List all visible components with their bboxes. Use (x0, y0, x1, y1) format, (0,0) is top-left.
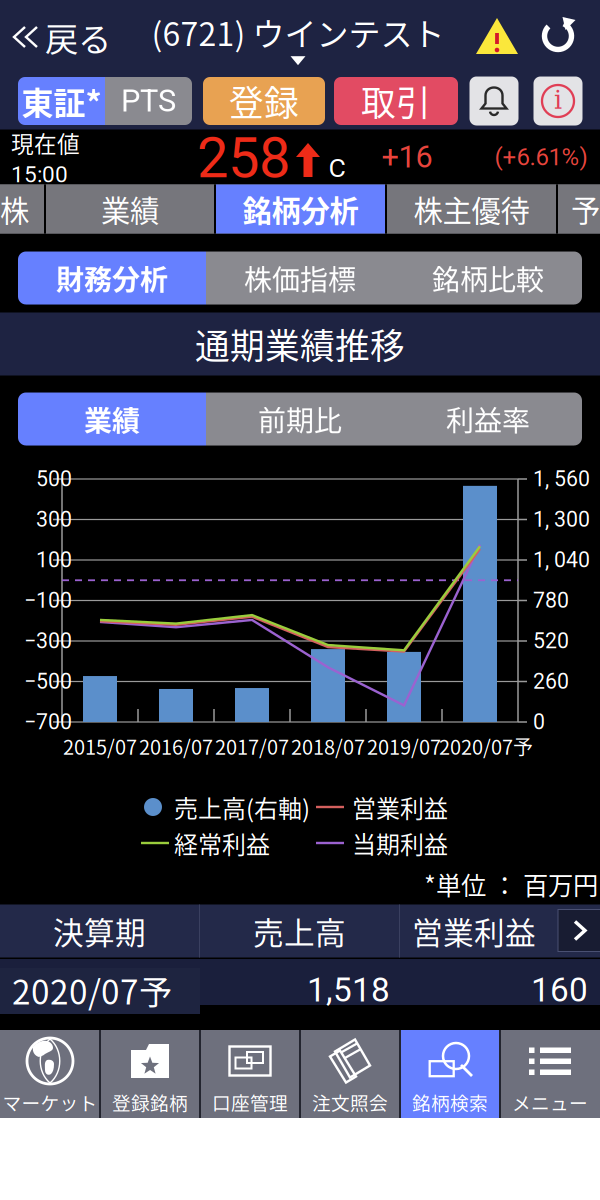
button[interactable]: 業績 (46, 184, 214, 233)
button[interactable]: 前期比 (206, 392, 394, 445)
staticText: 2017/07 (215, 731, 289, 760)
button[interactable]: 銘柄比較 (394, 251, 582, 304)
staticText: −300 (24, 628, 72, 653)
staticText: 営業利益 (412, 909, 536, 953)
staticText: 株 (0, 188, 29, 230)
staticText: 260 (533, 669, 569, 694)
staticText: 300 (36, 507, 72, 532)
staticText: 1,518 (307, 970, 390, 1010)
staticText: 500 (36, 466, 72, 491)
staticText: 2018/07 (291, 731, 365, 760)
staticText: 780 (533, 588, 569, 613)
staticText: 160 (531, 970, 588, 1010)
staticText: 登録銘柄 (112, 1088, 188, 1115)
staticText: 100 (36, 547, 72, 572)
staticText: 財務分析 (56, 258, 168, 298)
staticText: 戻る (45, 13, 111, 61)
button[interactable]: 情報 (533, 76, 582, 125)
staticText: 銘柄検索 (412, 1088, 488, 1115)
staticText: 注文照会 (312, 1088, 388, 1115)
staticText: PTS (121, 83, 176, 119)
staticText: 2020/07予 (439, 731, 533, 760)
staticText: 258 (197, 125, 290, 191)
staticText: 営業利益 (352, 790, 448, 824)
button[interactable]: 株 (0, 184, 44, 233)
staticText: 通期業績推移 (195, 319, 405, 369)
button[interactable]: 財務分析 (18, 251, 206, 304)
button[interactable]: 次へ (558, 909, 600, 951)
button[interactable]: 取引 (334, 77, 458, 125)
staticText: 銘柄比較 (432, 258, 544, 298)
staticText: 1, 040 (533, 547, 590, 572)
button[interactable]: 警告 (477, 18, 517, 54)
staticText: 2016/07 (139, 731, 213, 760)
staticText: 現在値 (11, 126, 80, 159)
staticText: 登録 (229, 76, 299, 126)
button[interactable]: 株主優待 (387, 184, 556, 233)
staticText: −500 (24, 669, 72, 694)
staticText: 利益率 (446, 399, 530, 439)
staticText: (6721) ウインテスト (151, 9, 444, 55)
staticText: 売上高(右軸) (174, 790, 310, 824)
staticText: マーケット (2, 1088, 97, 1115)
staticText: 1, 300 (533, 507, 590, 532)
staticText: −100 (24, 588, 72, 613)
button[interactable]: 銘柄検索 (400, 1030, 500, 1118)
button[interactable]: 更新 (539, 17, 577, 55)
staticText: 口座管理 (212, 1088, 288, 1115)
button[interactable]: 登録 (203, 77, 325, 125)
staticText: 当期利益 (352, 826, 448, 860)
staticText: 1, 560 (533, 466, 590, 491)
staticText: +16 (381, 139, 432, 175)
staticText: メニュー (512, 1088, 588, 1115)
staticText: 520 (533, 628, 569, 653)
staticText: 0 (533, 709, 545, 734)
staticText: 東証* (21, 78, 101, 124)
button[interactable]: 注文照会 (300, 1030, 400, 1118)
staticText: i (554, 85, 562, 115)
staticText: 予 (571, 188, 600, 230)
staticText: 決算期 (53, 909, 146, 953)
button[interactable]: 業績 (18, 392, 206, 445)
staticText: −700 (24, 709, 72, 734)
staticText: 経常利益 (174, 826, 270, 860)
staticText: 取引 (361, 76, 431, 126)
staticText: 2015/07 (63, 731, 137, 760)
staticText: 業績 (101, 188, 159, 230)
staticText: 株価指標 (244, 258, 356, 298)
button[interactable]: マーケット (0, 1030, 100, 1118)
button[interactable]: 銘柄分析 (216, 184, 385, 233)
button[interactable]: 口座管理 (200, 1030, 300, 1118)
staticText: 2020/07予 (12, 966, 172, 1014)
button[interactable]: メニュー (500, 1030, 600, 1118)
staticText: (+6.61%) (494, 143, 587, 171)
button[interactable]: 通知 (469, 76, 518, 125)
button[interactable]: 戻る (12, 12, 132, 62)
button[interactable]: 利益率 (394, 392, 582, 445)
button[interactable]: 予 (558, 184, 600, 233)
button[interactable]: 登録銘柄 (100, 1030, 200, 1118)
staticText: *単位 ： 百万円 (424, 866, 598, 902)
button[interactable]: 株価指標 (206, 251, 394, 304)
staticText: 前期比 (258, 399, 342, 439)
staticText: 2019/07 (367, 731, 441, 760)
staticText: 株主優待 (413, 188, 529, 230)
staticText: 業績 (84, 399, 140, 439)
staticText: 銘柄分析 (242, 188, 358, 230)
staticText: 売上高 (253, 909, 346, 953)
staticText: 15:00 (11, 161, 68, 188)
staticText: C (328, 152, 345, 184)
